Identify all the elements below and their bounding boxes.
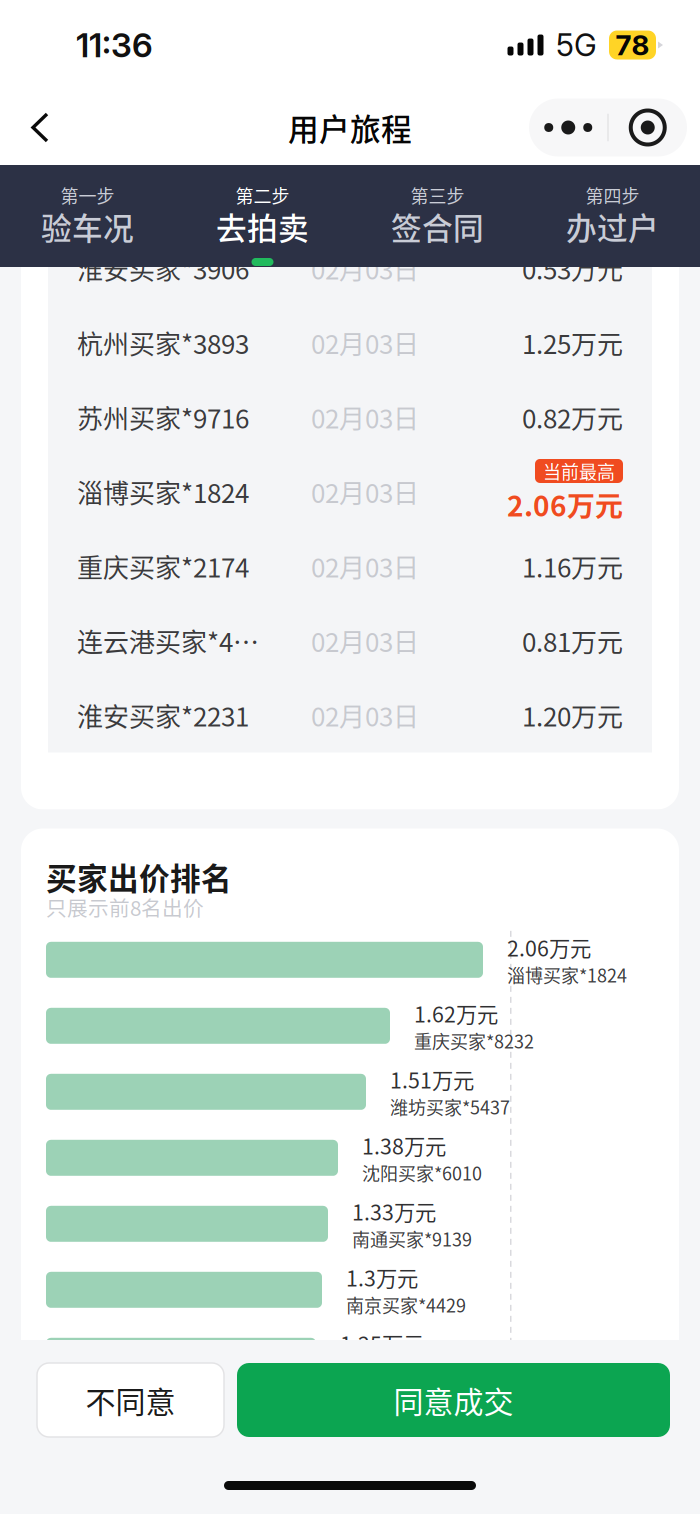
staticText: 买家出价排名 bbox=[46, 854, 232, 899]
staticText: 02月03日 bbox=[311, 324, 419, 361]
button[interactable]: 不同意 bbox=[37, 1363, 224, 1437]
staticText: 02月03日 bbox=[311, 547, 419, 585]
staticText: 1.38万元 bbox=[362, 1130, 446, 1161]
staticText: 重庆买家*8232 bbox=[414, 1028, 534, 1054]
staticText: 连云港买家*4… bbox=[77, 622, 259, 659]
staticText: 第二步 bbox=[235, 182, 289, 208]
staticText: 潍坊买家*5437 bbox=[390, 1094, 510, 1120]
staticText: 1.33万元 bbox=[352, 1196, 436, 1227]
staticText: 1.25万元 bbox=[340, 1328, 424, 1359]
staticText: 去拍卖 bbox=[216, 204, 309, 248]
staticText: 验车况 bbox=[41, 204, 134, 248]
staticText: 02月03日 bbox=[311, 249, 419, 287]
staticText: 0.81万元 bbox=[522, 622, 623, 659]
button[interactable]: Back bbox=[12, 97, 68, 157]
staticText: 1.20万元 bbox=[522, 696, 623, 734]
staticText: 淄博买家*1824 bbox=[507, 962, 627, 988]
staticText: 02月03日 bbox=[311, 473, 419, 510]
staticText: 南京买家*4429 bbox=[346, 1292, 466, 1318]
staticText: 淮安买家*2231 bbox=[77, 696, 249, 734]
staticText: 沈阳买家*6010 bbox=[362, 1160, 482, 1186]
staticText: 5G bbox=[556, 26, 597, 63]
staticText: 同意成交 bbox=[393, 1378, 513, 1422]
button[interactable]: 第一步 bbox=[0, 165, 175, 267]
staticText: 2.06万元 bbox=[507, 932, 591, 963]
staticText: 当前最高 bbox=[543, 458, 615, 484]
button[interactable]: 第二步 bbox=[175, 165, 350, 267]
staticText: 苏州买家*9716 bbox=[77, 398, 249, 436]
staticText: 杭州买家*3893 bbox=[77, 324, 249, 361]
staticText: 南通买家*9139 bbox=[352, 1226, 472, 1252]
staticText: 0.53万元 bbox=[522, 249, 623, 287]
staticText: 办过户 bbox=[566, 204, 659, 248]
staticText: 78 bbox=[615, 28, 649, 62]
staticText: 2.06万元 bbox=[507, 484, 623, 524]
staticText: 02月03日 bbox=[311, 622, 419, 659]
staticText: 签合同 bbox=[391, 204, 484, 248]
button[interactable]: 同意成交 bbox=[237, 1363, 670, 1437]
staticText: 第一步 bbox=[60, 182, 114, 208]
staticText: 淮安买家*3906 bbox=[77, 249, 249, 287]
staticText: 只展示前8名出价 bbox=[46, 892, 204, 922]
button[interactable]: Close bbox=[609, 98, 687, 156]
staticText: 1.16万元 bbox=[522, 547, 623, 585]
staticText: 1.25万元 bbox=[522, 324, 623, 361]
button[interactable]: 第三步 bbox=[350, 165, 525, 267]
staticText: 02月03日 bbox=[311, 398, 419, 436]
staticText: 第三步 bbox=[410, 182, 464, 208]
staticText: 0.82万元 bbox=[522, 398, 623, 436]
staticText: 1.3万元 bbox=[346, 1262, 418, 1293]
staticText: 重庆买家*2174 bbox=[77, 547, 249, 585]
staticText: 不同意 bbox=[85, 1378, 175, 1422]
button[interactable]: 第四步 bbox=[525, 165, 700, 267]
staticText: 02月03日 bbox=[311, 696, 419, 734]
button[interactable]: More bbox=[529, 98, 607, 156]
staticText: 1.62万元 bbox=[414, 998, 498, 1029]
staticText: 杭州买家*3893 bbox=[340, 1358, 460, 1384]
staticText: 1.51万元 bbox=[390, 1064, 474, 1095]
staticText: 11:36 bbox=[76, 25, 153, 65]
staticText: 用户旅程 bbox=[288, 105, 412, 150]
staticText: 淄博买家*1824 bbox=[77, 473, 249, 510]
staticText: 第四步 bbox=[585, 182, 639, 208]
